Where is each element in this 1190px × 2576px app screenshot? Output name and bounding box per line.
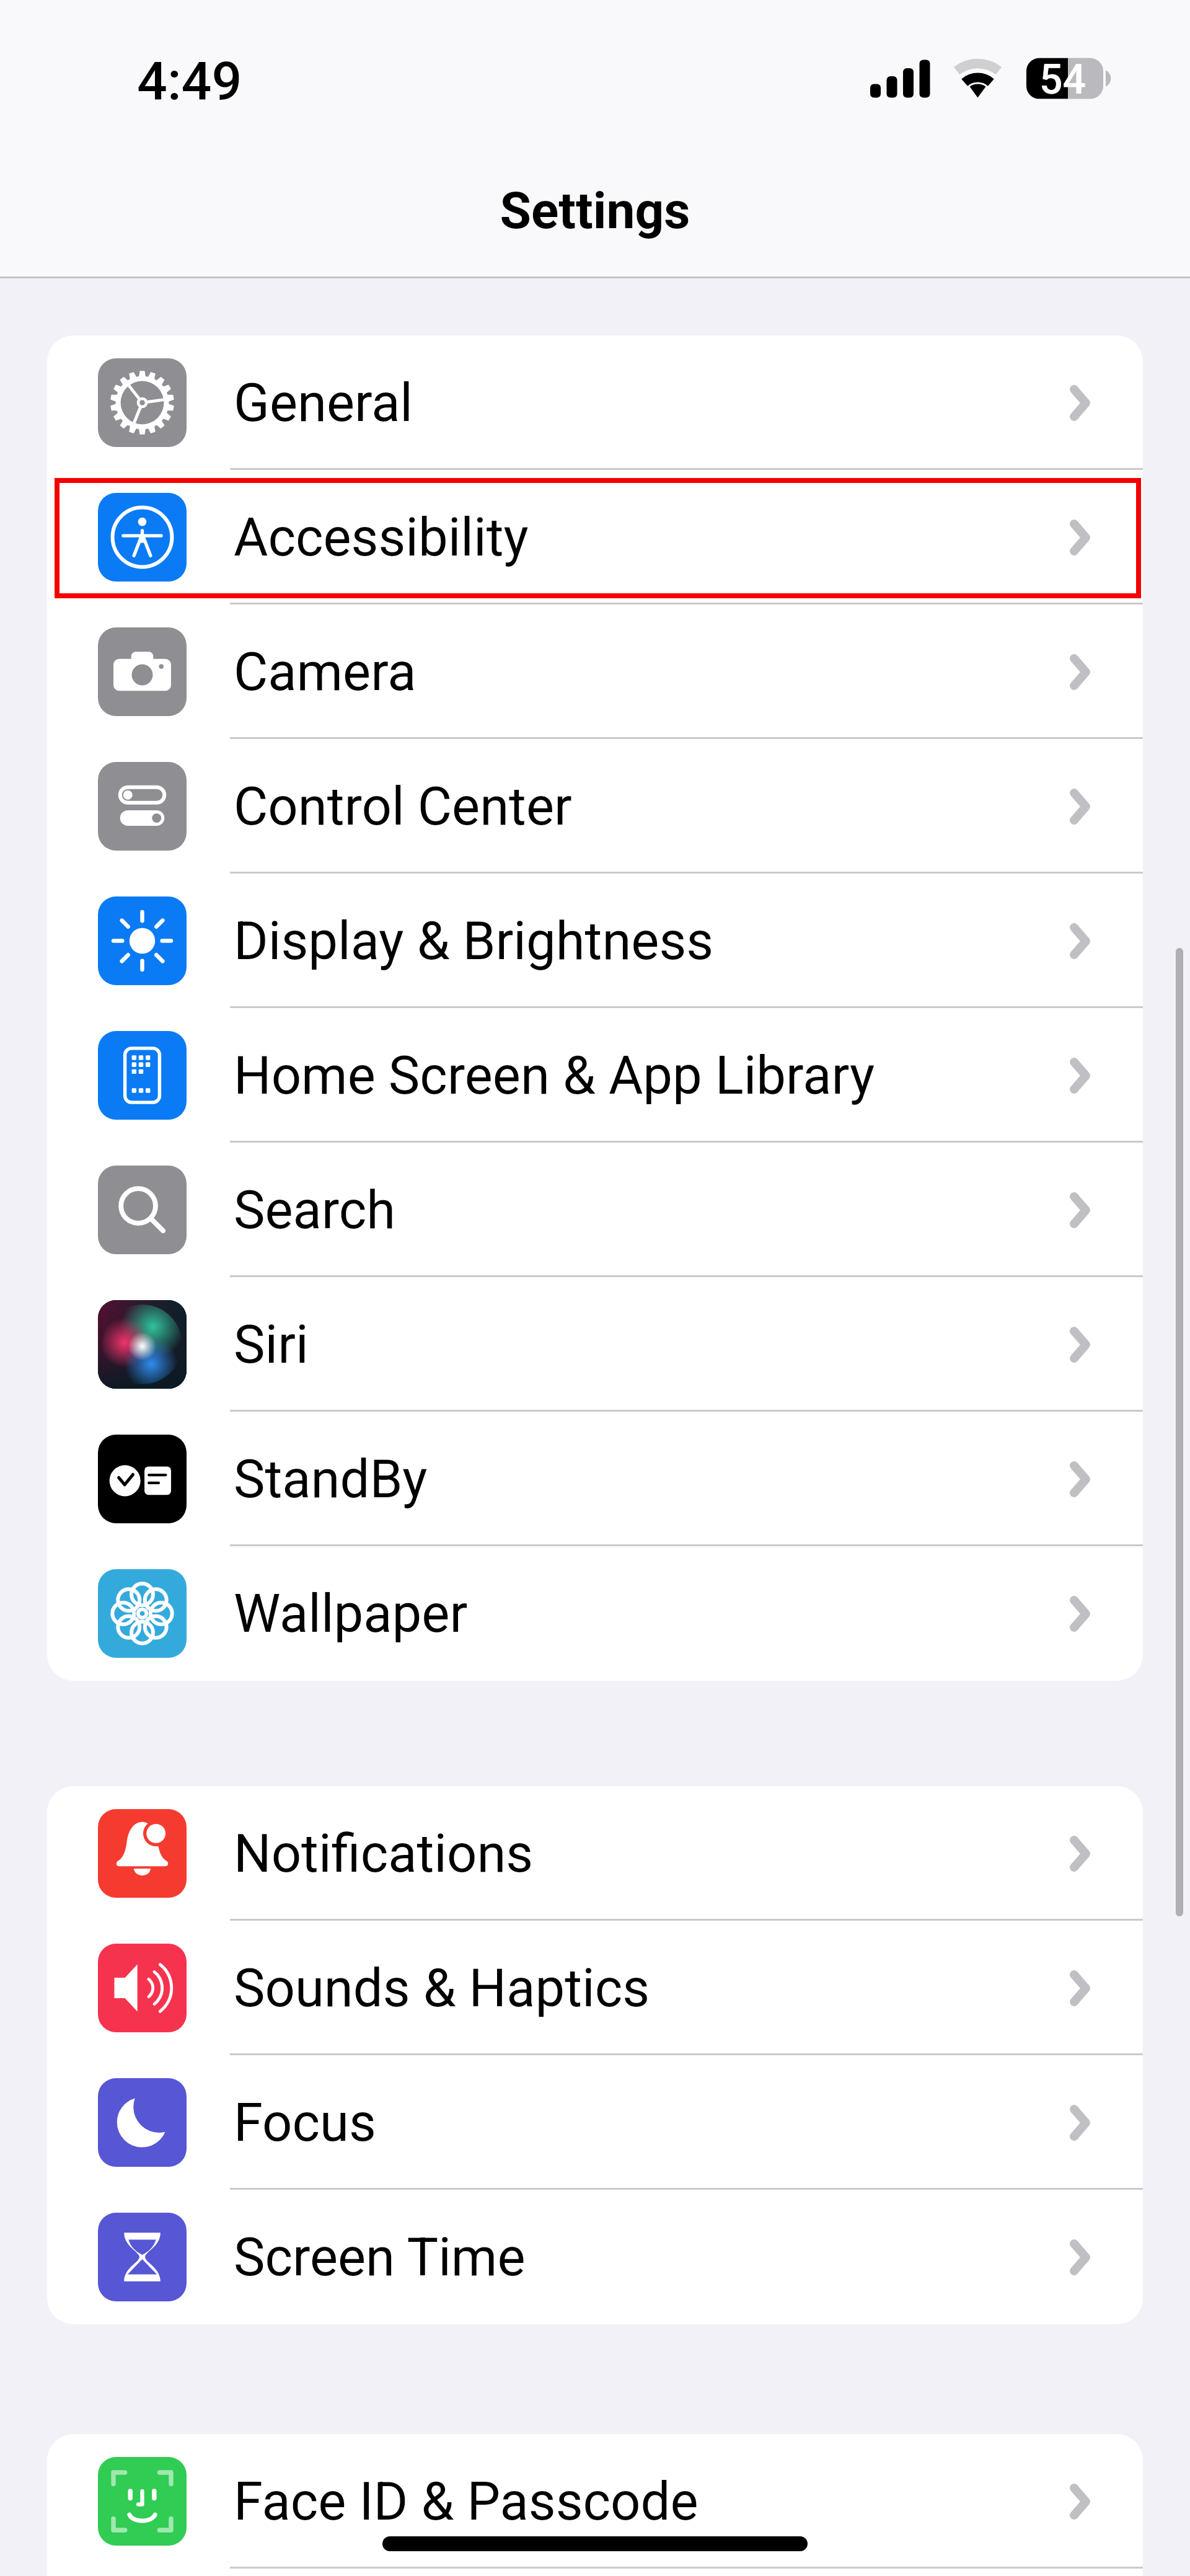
staticText: Face ID & Passcode xyxy=(234,2471,699,2533)
button[interactable]: Control Center xyxy=(47,739,1143,874)
staticText: StandBy xyxy=(234,1448,428,1510)
staticText: General xyxy=(234,372,413,434)
button[interactable]: Wallpaper xyxy=(47,1546,1143,1681)
staticText: 4:49 xyxy=(137,50,242,113)
button[interactable]: Sounds & Haptics xyxy=(47,1921,1143,2055)
button[interactable]: Display & Brightness xyxy=(47,874,1143,1008)
button[interactable]: General xyxy=(47,335,1143,470)
button[interactable]: Camera xyxy=(47,604,1143,739)
staticText: Siri xyxy=(234,1314,309,1376)
staticText: Settings xyxy=(0,181,1190,241)
button[interactable]: Search xyxy=(47,1143,1143,1277)
staticText: Home Screen & App Library xyxy=(234,1045,875,1107)
button[interactable]: Notifications xyxy=(47,1786,1143,1921)
staticText: Focus xyxy=(234,2092,376,2154)
staticText: Search xyxy=(234,1179,396,1241)
button[interactable]: StandBy xyxy=(47,1412,1143,1546)
staticText: Screen Time xyxy=(234,2226,526,2288)
button[interactable]: Screen Time xyxy=(47,2190,1143,2324)
button[interactable]: Accessibility xyxy=(47,470,1143,604)
staticText: Camera xyxy=(234,641,416,703)
staticText: Sounds & Haptics xyxy=(234,1957,650,2019)
staticText: Control Center xyxy=(234,776,572,838)
button[interactable]: Focus xyxy=(47,2055,1143,2190)
staticText: Accessibility xyxy=(234,507,529,569)
staticText: Wallpaper xyxy=(234,1583,468,1645)
button[interactable]: Face ID & Passcode xyxy=(47,2434,1143,2569)
button[interactable]: Siri xyxy=(47,1277,1143,1412)
staticText: Notifications xyxy=(234,1823,534,1885)
button[interactable]: Home Screen & App Library xyxy=(47,1008,1143,1143)
staticText: Display & Brightness xyxy=(234,910,714,972)
staticText: 54 xyxy=(1039,56,1086,104)
